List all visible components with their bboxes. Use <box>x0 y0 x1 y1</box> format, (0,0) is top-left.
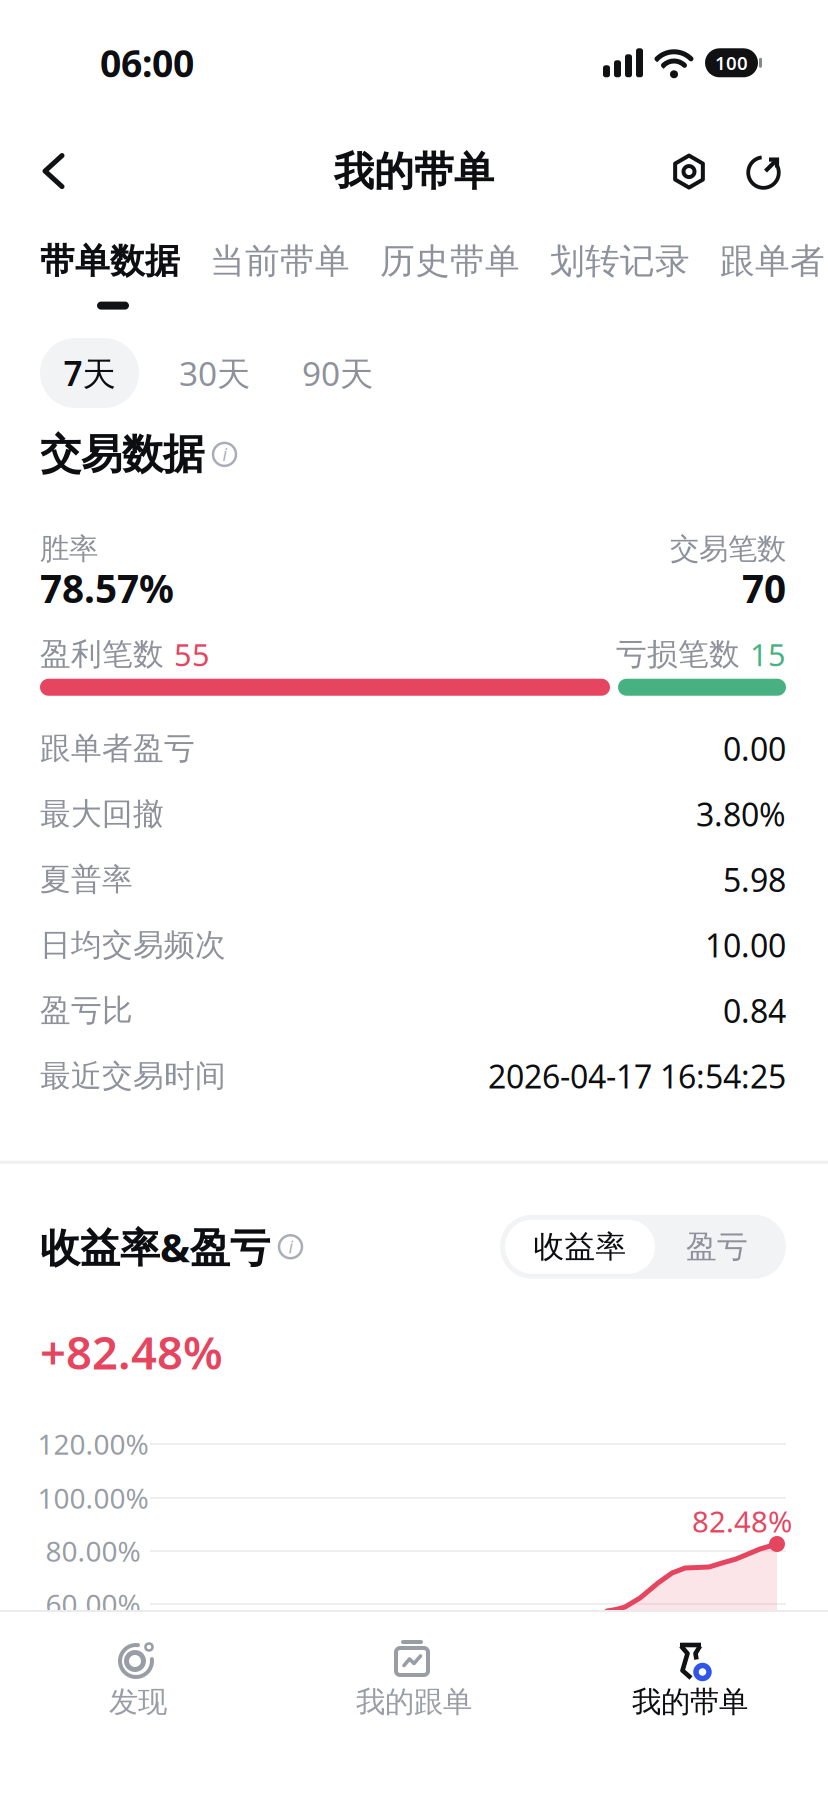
staticText: 交易笔数 <box>670 531 786 567</box>
staticText: 带单数据 <box>40 240 180 283</box>
staticText: 盈亏比 <box>40 992 133 1029</box>
staticText: 0.84 <box>723 989 786 1032</box>
staticText: 跟单者 <box>720 240 825 283</box>
staticText: 交易数据 <box>40 429 204 480</box>
button[interactable]: 7天 <box>40 338 139 408</box>
button[interactable]: 历史带单 <box>380 240 520 283</box>
staticText: 2026-04-17 16:54:25 <box>488 1055 786 1097</box>
button[interactable]: 收益率 <box>505 1220 655 1274</box>
staticText: 0.00 <box>723 727 786 770</box>
staticText: 06:00 <box>100 38 194 88</box>
staticText: 我的带单 <box>632 1684 748 1720</box>
staticText: 100.00% <box>37 1479 148 1517</box>
staticText: i <box>288 1235 292 1258</box>
staticText: 80.00% <box>45 1532 140 1570</box>
staticText: 盈利笔数 <box>40 636 164 673</box>
button[interactable]: 30天 <box>139 351 250 395</box>
button[interactable]: 交易数据说明 <box>213 443 236 466</box>
staticText: 我的跟单 <box>356 1684 472 1720</box>
staticText: 历史带单 <box>380 240 520 283</box>
staticText: 60.00% <box>45 1585 140 1623</box>
staticText: 30天 <box>179 351 250 395</box>
button[interactable]: 设置 <box>672 153 706 191</box>
staticText: 3.80% <box>696 793 786 835</box>
staticText: 收益率 <box>533 1228 626 1266</box>
staticText: 78.57% <box>40 562 174 614</box>
staticText: 我的带单 <box>334 147 494 196</box>
staticText: 100 <box>715 50 748 75</box>
staticText: 跟单者盈亏 <box>40 730 195 767</box>
staticText: 70 <box>742 562 786 614</box>
button[interactable]: 发现 <box>0 1640 276 1720</box>
staticText: 日均交易频次 <box>40 926 226 964</box>
button[interactable]: 我的跟单 <box>276 1640 552 1720</box>
staticText: 发现 <box>109 1684 167 1720</box>
button[interactable]: 划转记录 <box>550 240 690 283</box>
button[interactable]: 我的带单 <box>552 1640 828 1720</box>
button[interactable]: 跟单者 <box>720 240 825 283</box>
staticText: 亏损笔数 <box>616 636 740 673</box>
staticText: 10.00 <box>705 924 786 966</box>
button[interactable]: 盈亏 <box>500 1228 748 1266</box>
button[interactable]: 分享 <box>706 153 782 191</box>
staticText: 90天 <box>302 351 373 395</box>
staticText: +82.48% <box>40 1322 223 1382</box>
staticText: 82.48% <box>692 1501 792 1540</box>
staticText: 最大回撤 <box>40 795 164 833</box>
button[interactable]: 收益率说明 <box>279 1235 302 1258</box>
button[interactable]: 当前带单 <box>210 240 350 283</box>
staticText: 55 <box>174 634 210 675</box>
staticText: 当前带单 <box>210 240 350 283</box>
button[interactable]: 90天 <box>250 351 373 395</box>
staticText: 7天 <box>63 351 115 395</box>
button[interactable]: 带单数据 <box>40 240 180 283</box>
staticText: 收益率&盈亏 <box>40 1220 270 1273</box>
staticText: 5.98 <box>723 858 786 901</box>
staticText: 最近交易时间 <box>40 1057 226 1095</box>
staticText: 胜率 <box>40 531 98 567</box>
button[interactable]: 返回 <box>0 154 66 190</box>
staticText: 盈亏 <box>686 1228 748 1266</box>
staticText: 120.00% <box>37 1425 148 1463</box>
staticText: 夏普率 <box>40 861 133 898</box>
staticText: 划转记录 <box>550 240 690 283</box>
staticText: 15 <box>750 634 786 675</box>
staticText: i <box>222 443 226 466</box>
